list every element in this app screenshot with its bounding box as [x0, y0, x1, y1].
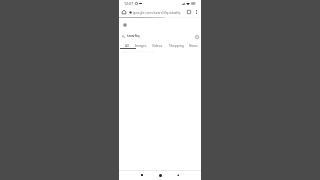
button[interactable]: Videos [150, 43, 165, 47]
staticText: 12:07 [124, 1, 134, 6]
button[interactable]: Back [174, 171, 182, 179]
staticText: All [125, 43, 129, 47]
button[interactable]: Switch tabs [186, 9, 192, 15]
button[interactable]: More options [193, 9, 199, 15]
staticText: Images [135, 43, 147, 47]
button[interactable]: Home [156, 171, 164, 179]
button[interactable]: News [187, 43, 200, 47]
staticText: News [189, 43, 198, 47]
button[interactable]: Menu [122, 22, 127, 27]
staticText: google.com/search?q=tawfiq [133, 10, 181, 15]
button[interactable]: Shopping [167, 43, 186, 47]
staticText: tawfiq [127, 33, 140, 39]
button[interactable]: Images [133, 43, 149, 47]
button[interactable]: Recent apps [138, 171, 146, 179]
button[interactable]: All [123, 43, 131, 47]
staticText: Videos [152, 43, 163, 47]
button[interactable]: Home [121, 9, 127, 15]
staticText: Shopping [169, 43, 184, 47]
button[interactable]: Clear search [194, 34, 199, 39]
